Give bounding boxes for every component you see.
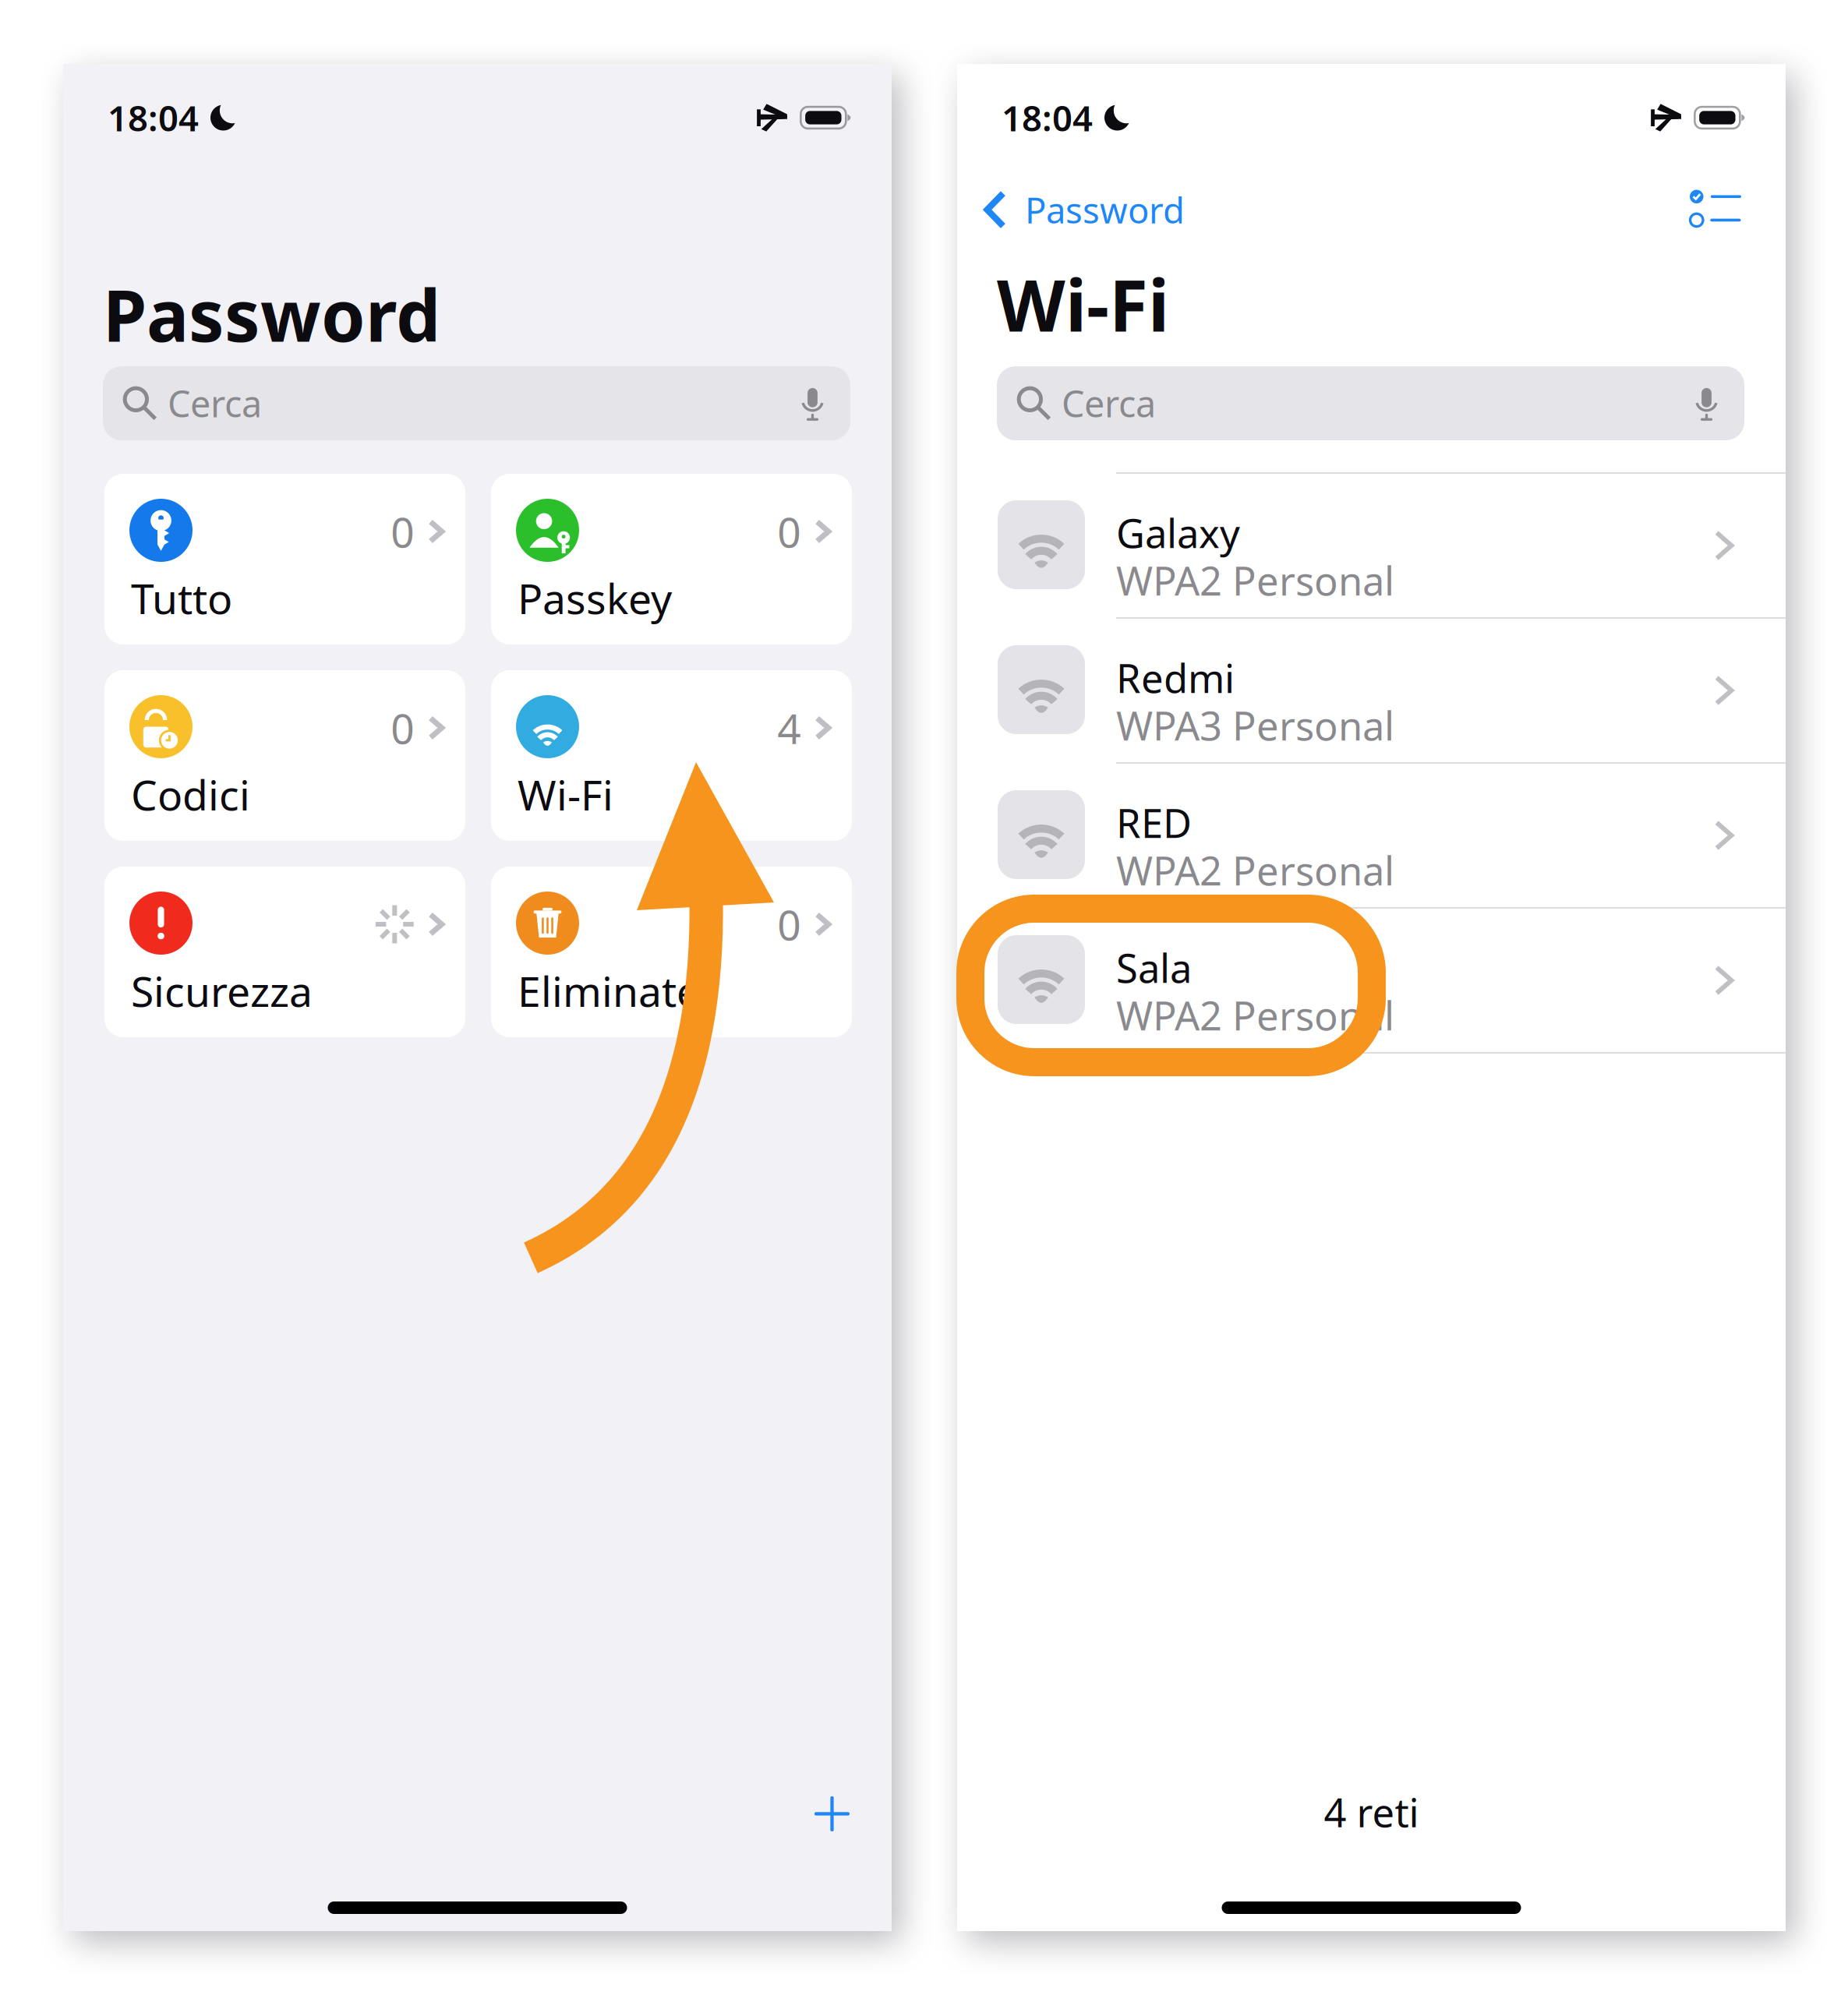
staticText: Sala bbox=[1116, 941, 1192, 994]
staticText: Eliminate bbox=[518, 963, 700, 1018]
staticText: WPA2 Personal bbox=[1116, 844, 1394, 896]
staticText: Password bbox=[1025, 186, 1185, 233]
button[interactable]: Galaxy bbox=[957, 474, 1786, 617]
button[interactable]: Sala bbox=[957, 909, 1786, 1052]
staticText: 0 bbox=[777, 897, 801, 952]
staticText: 0 bbox=[777, 504, 801, 559]
staticText: Codici bbox=[131, 767, 250, 822]
staticText: Password bbox=[103, 267, 440, 361]
button[interactable]: Add password bbox=[790, 1771, 875, 1856]
staticText: RED bbox=[1116, 796, 1192, 849]
button[interactable]: 0 bbox=[491, 867, 852, 1037]
staticText: 0 bbox=[391, 504, 415, 559]
staticText: 0 bbox=[391, 700, 415, 755]
staticText: Redmi bbox=[1116, 651, 1235, 704]
button[interactable]: Sort and filter bbox=[1679, 178, 1752, 238]
button[interactable]: 0 bbox=[491, 474, 852, 644]
staticText: 4 reti bbox=[1324, 1786, 1419, 1838]
button[interactable]: 4 bbox=[491, 670, 852, 841]
staticText: WPA2 Personal bbox=[1116, 989, 1394, 1041]
staticText: Cerca bbox=[1062, 379, 1156, 427]
button[interactable]: Sicurezza bbox=[104, 867, 465, 1037]
button[interactable]: 0 bbox=[104, 670, 465, 841]
staticText: 18:04 bbox=[1002, 94, 1093, 141]
button[interactable]: 0 bbox=[104, 474, 465, 644]
button[interactable]: Password bbox=[976, 178, 1193, 241]
staticText: Wi-Fi bbox=[997, 257, 1169, 351]
button[interactable]: RED bbox=[957, 764, 1786, 907]
staticText: WPA2 Personal bbox=[1116, 554, 1394, 607]
staticText: Wi-Fi bbox=[518, 767, 613, 822]
staticText: Cerca bbox=[168, 379, 262, 427]
staticText: Galaxy bbox=[1116, 507, 1240, 559]
staticText: WPA3 Personal bbox=[1116, 699, 1394, 751]
staticText: 4 bbox=[777, 700, 801, 755]
staticText: Tutto bbox=[131, 570, 232, 626]
staticText: Passkey bbox=[518, 570, 672, 626]
button[interactable]: Redmi bbox=[957, 619, 1786, 762]
staticText: 18:04 bbox=[108, 94, 199, 141]
staticText: Sicurezza bbox=[131, 963, 313, 1018]
